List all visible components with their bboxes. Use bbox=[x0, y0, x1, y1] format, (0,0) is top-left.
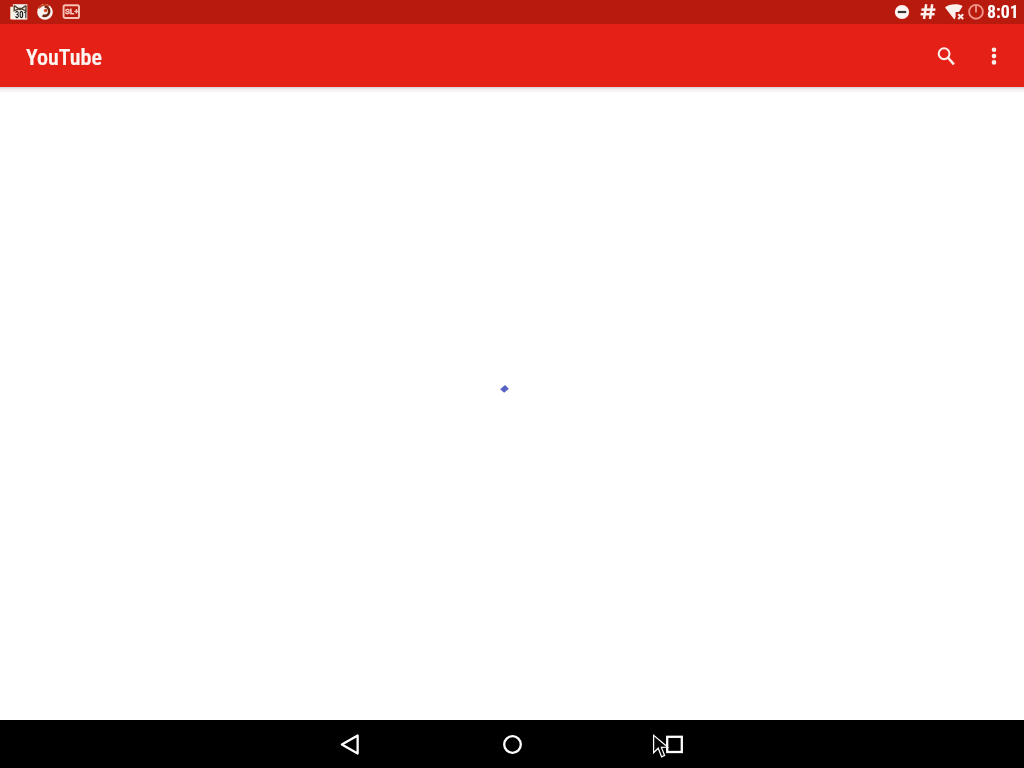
button[interactable]: Search bbox=[922, 32, 970, 80]
staticText: SL+ bbox=[65, 7, 79, 16]
button[interactable]: Back bbox=[326, 720, 374, 768]
button[interactable]: Recent apps bbox=[650, 720, 698, 768]
button[interactable]: More options bbox=[970, 32, 1018, 80]
staticText: 8:01 bbox=[987, 1, 1019, 22]
button[interactable]: Home bbox=[488, 720, 536, 768]
staticText: 301 bbox=[15, 10, 28, 20]
staticText: YouTube bbox=[26, 45, 102, 71]
